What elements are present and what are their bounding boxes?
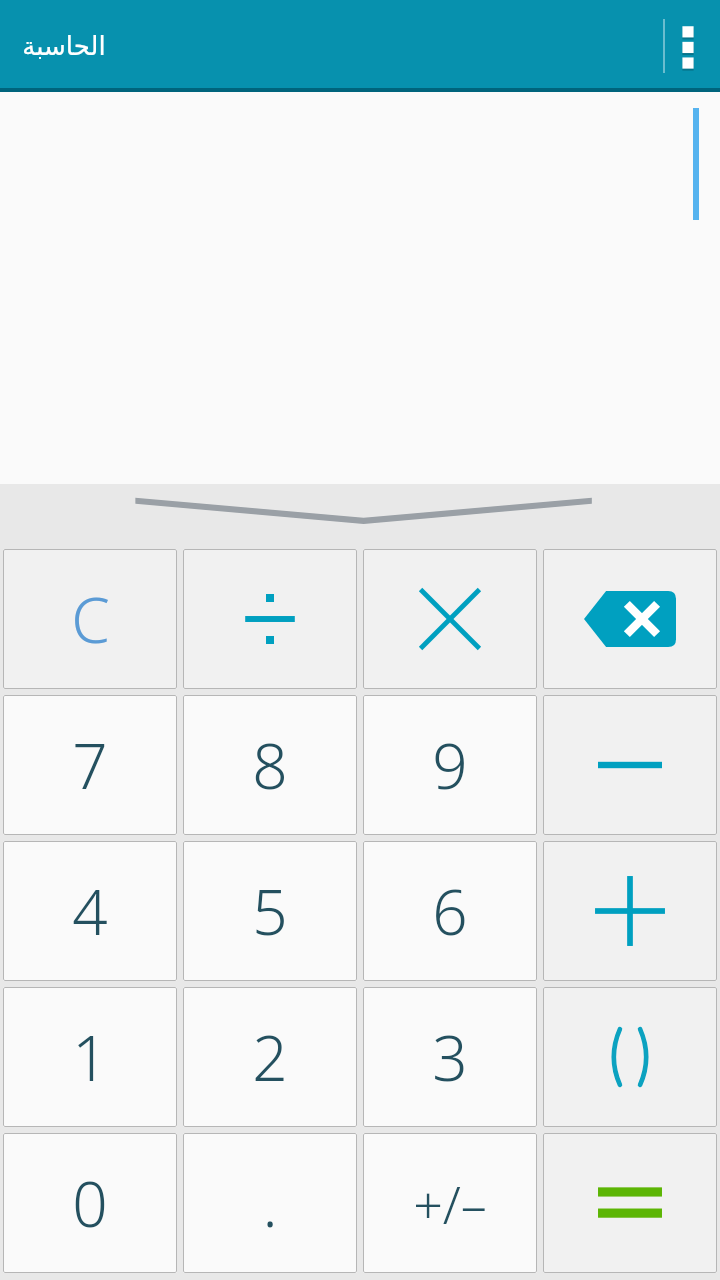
button[interactable]: Backspace xyxy=(543,549,717,689)
button[interactable]: 0 xyxy=(3,1133,177,1273)
button[interactable]: Equals xyxy=(543,1133,717,1273)
staticText: 0 xyxy=(72,1161,108,1245)
staticText: 5 xyxy=(252,869,288,953)
button[interactable]: Plus xyxy=(543,841,717,981)
button[interactable]: 3 xyxy=(363,987,537,1127)
staticText: 1 xyxy=(72,1015,108,1099)
button[interactable]: 6 xyxy=(363,841,537,981)
staticText: +/– xyxy=(413,1168,487,1239)
button[interactable]: +/– xyxy=(363,1133,537,1273)
staticText: . xyxy=(262,1161,278,1245)
button[interactable]: 9 xyxy=(363,695,537,835)
button[interactable]: Minus xyxy=(543,695,717,835)
button[interactable]: 5 xyxy=(183,841,357,981)
button[interactable]: More options xyxy=(656,0,720,92)
button[interactable]: Parentheses xyxy=(543,987,717,1127)
staticText: 3 xyxy=(432,1015,468,1099)
button[interactable] xyxy=(0,92,720,484)
button[interactable]: 4 xyxy=(3,841,177,981)
button[interactable]: 1 xyxy=(3,987,177,1127)
button[interactable]: . xyxy=(183,1133,357,1273)
staticText: 2 xyxy=(252,1015,288,1099)
button[interactable] xyxy=(363,549,537,689)
button[interactable]: C xyxy=(3,549,177,689)
button[interactable]: 8 xyxy=(183,695,357,835)
button[interactable] xyxy=(183,549,357,689)
button[interactable]: 2 xyxy=(183,987,357,1127)
staticText: 6 xyxy=(432,869,468,953)
staticText: 4 xyxy=(72,869,108,953)
staticText: 7 xyxy=(72,723,108,807)
button[interactable]: Collapse keypad xyxy=(0,484,720,546)
staticText: C xyxy=(71,577,110,661)
staticText: الحاسبة xyxy=(22,31,106,61)
staticText: 8 xyxy=(252,723,288,807)
staticText: 9 xyxy=(432,723,468,807)
button[interactable]: 7 xyxy=(3,695,177,835)
